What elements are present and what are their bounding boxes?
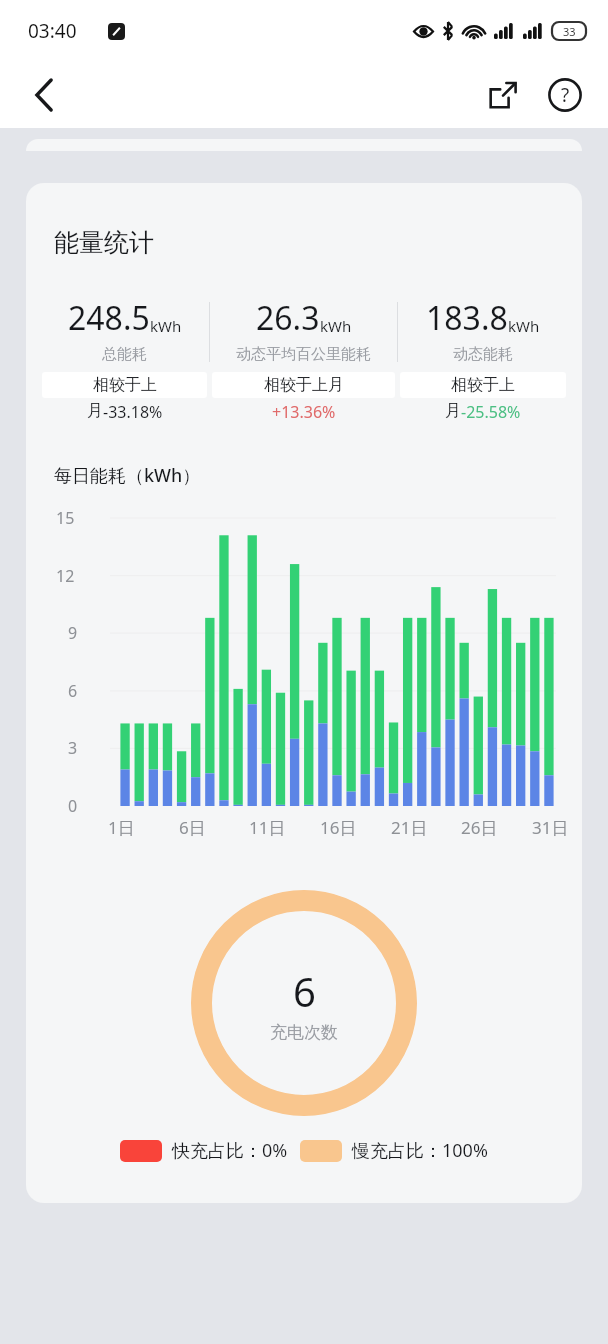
staticText: 充电次数 [270,1022,338,1043]
staticText: 相较于上 [93,375,157,395]
staticText: 0 [68,795,78,817]
staticText: 月 [445,401,461,421]
staticText: 相较于上 [451,375,515,395]
staticText: 248.5 [68,296,150,340]
staticText: 11日 [249,816,286,839]
staticText: 183.8 [426,296,508,340]
staticText: 15 [56,507,75,529]
staticText: 3 [68,737,78,759]
staticText: 16日 [320,816,357,839]
staticText: 03:40 [28,18,77,44]
button[interactable]: Help [542,72,588,118]
button[interactable]: Back [20,71,68,119]
staticText: +13.36% [272,401,336,423]
staticText: 动态平均百公里能耗 [236,345,371,364]
staticText: kWh [320,316,352,336]
staticText: -25.58% [461,401,521,423]
button[interactable]: 26.3 [210,296,397,423]
staticText: 9 [68,622,78,644]
staticText: 动态能耗 [453,345,513,364]
staticText: 能量统计 [54,227,154,258]
staticText: -33.18% [103,401,163,423]
staticText: 6 [68,680,78,702]
staticText: 总能耗 [102,345,147,364]
staticText: kWh [150,316,182,336]
staticText: 26.3 [256,296,320,340]
staticText: 相较于上月 [264,375,344,395]
staticText: 1日 [108,816,135,839]
staticText: kWh [508,316,540,336]
button[interactable]: Share [480,72,526,118]
button[interactable]: 248.5 [40,296,209,423]
staticText: 慢充占比：100% [352,1138,488,1163]
button[interactable]: 183.8 [398,296,568,423]
staticText: ? [561,82,570,108]
staticText: 月 [87,401,103,421]
staticText: 12 [56,565,75,587]
staticText: 6日 [179,816,206,839]
staticText: 每日能耗（kWh） [54,463,201,488]
staticText: 21日 [391,816,428,839]
staticText: 31日 [532,816,569,839]
staticText: 26日 [461,816,498,839]
staticText: 快充占比：0% [172,1138,288,1163]
staticText: 6 [293,964,316,1018]
staticText: 33 [563,24,576,39]
